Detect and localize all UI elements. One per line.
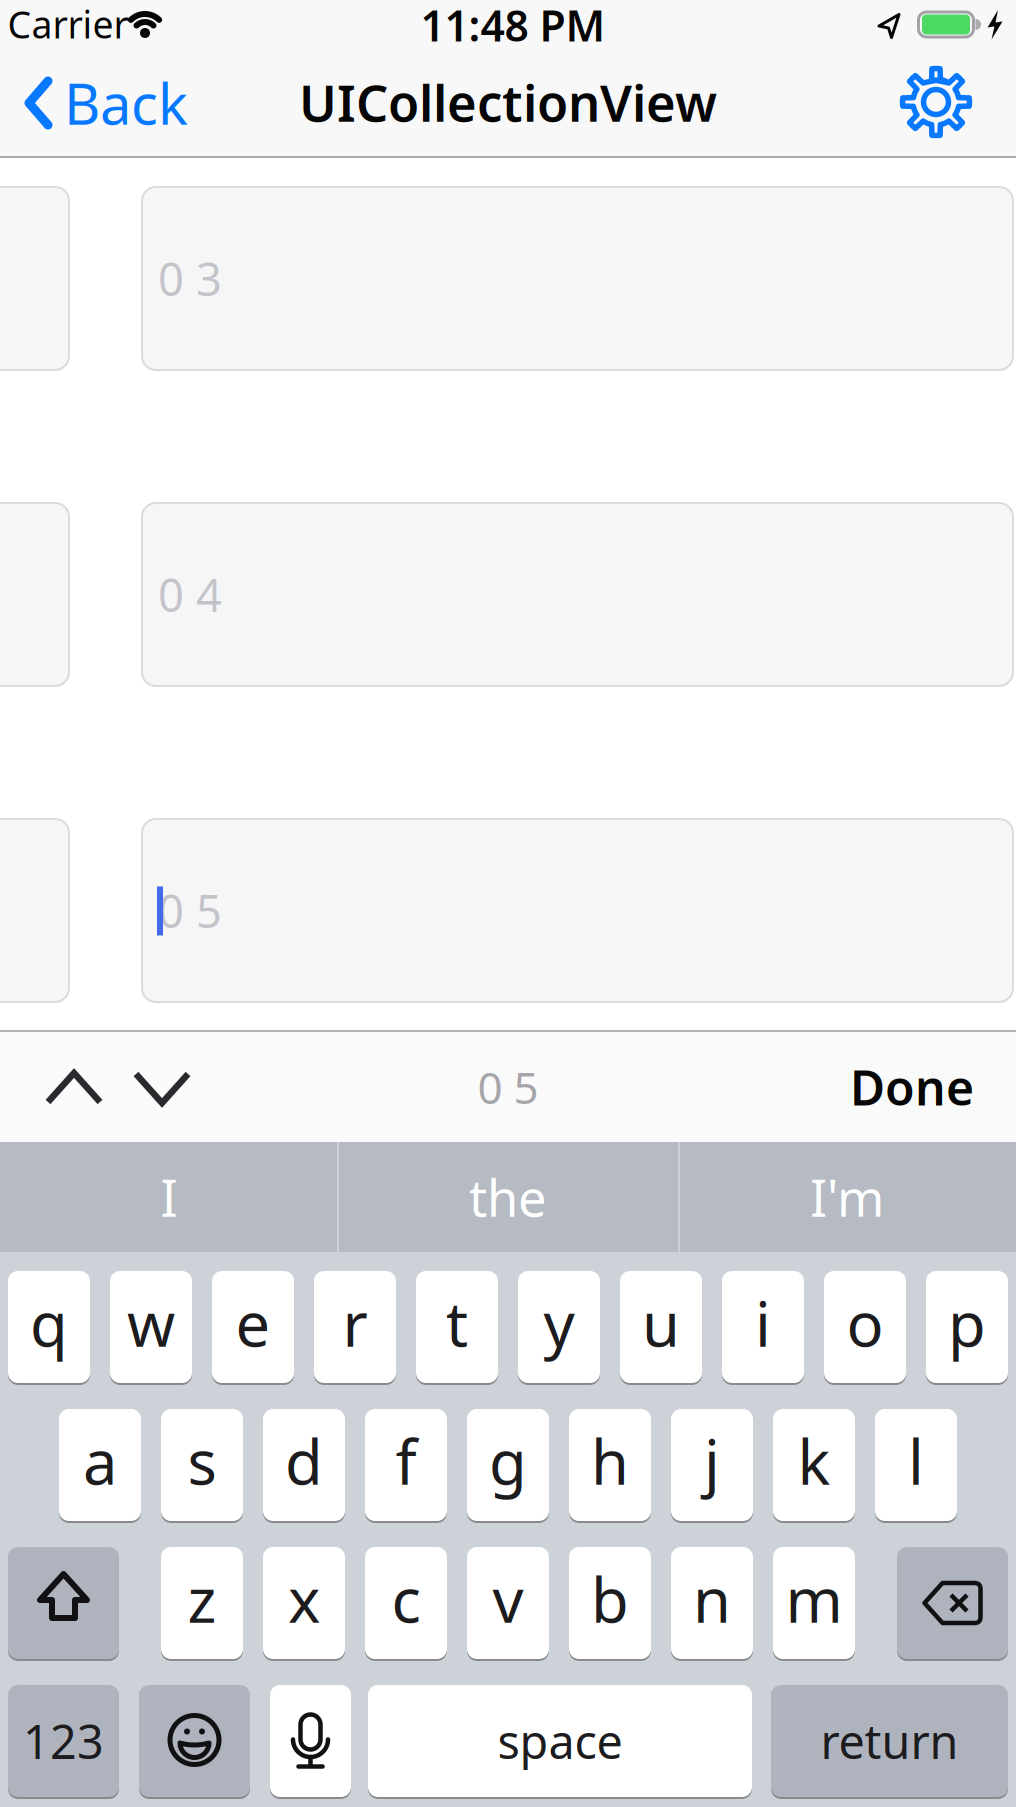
staticText: b [591, 1558, 629, 1640]
button[interactable]: y [518, 1270, 600, 1384]
staticText: x [288, 1558, 320, 1640]
button[interactable]: 0 3 [141, 186, 1014, 371]
staticText: v [492, 1558, 523, 1640]
button[interactable]: x [263, 1546, 345, 1660]
button[interactable]: k [773, 1408, 855, 1522]
button[interactable]: l [875, 1408, 957, 1522]
staticText: 11:48 PM [420, 0, 605, 53]
button[interactable]: Numbers [8, 1684, 119, 1798]
staticText: f [395, 1420, 416, 1502]
button[interactable]: Delete [897, 1546, 1008, 1660]
staticText: Carrier [7, 0, 128, 49]
staticText: j [704, 1420, 720, 1502]
button[interactable]: Dictate [270, 1684, 351, 1798]
staticText: 0 5 [158, 880, 222, 941]
staticText: 0 5 [477, 1058, 538, 1116]
button[interactable]: Done [850, 1055, 974, 1119]
button[interactable]: 0 4 [141, 502, 1014, 687]
button[interactable]: h [569, 1408, 651, 1522]
button[interactable]: I'm [682, 1142, 1012, 1252]
button[interactable]: p [926, 1270, 1008, 1384]
button[interactable]: w [110, 1270, 192, 1384]
staticText: n [693, 1558, 731, 1640]
button[interactable]: d [263, 1408, 345, 1522]
button[interactable]: Next field [132, 1069, 192, 1107]
staticText: h [591, 1420, 629, 1502]
button[interactable]: z [161, 1546, 243, 1660]
staticText: 0 3 [158, 248, 222, 309]
button[interactable]: Return [771, 1684, 1008, 1798]
staticText: the [469, 1163, 547, 1231]
button[interactable]: Emoji [139, 1684, 250, 1798]
staticText: p [948, 1282, 986, 1364]
staticText: r [342, 1282, 367, 1364]
staticText: I'm [810, 1163, 884, 1231]
button[interactable]: Previous field [44, 1069, 104, 1107]
staticText: return [820, 1710, 958, 1772]
button[interactable]: space [368, 1684, 752, 1798]
button[interactable]: b [569, 1546, 651, 1660]
button[interactable]: I [4, 1142, 334, 1252]
button[interactable]: j [671, 1408, 753, 1522]
staticText: w [127, 1282, 175, 1364]
staticText: Done [850, 1055, 974, 1119]
button[interactable]: c [365, 1546, 447, 1660]
button[interactable]: a [59, 1408, 141, 1522]
button[interactable]: Settings [902, 68, 969, 135]
staticText: 0 4 [158, 564, 222, 625]
staticText: y [543, 1282, 574, 1364]
staticText: e [235, 1282, 270, 1364]
staticText: s [187, 1420, 216, 1502]
button[interactable]: i [722, 1270, 804, 1384]
staticText: space [497, 1710, 622, 1772]
button[interactable]: o [824, 1270, 906, 1384]
staticText: m [785, 1558, 842, 1640]
button[interactable]: n [671, 1546, 753, 1660]
button[interactable]: v [467, 1546, 549, 1660]
button[interactable]: r [314, 1270, 396, 1384]
button[interactable]: g [467, 1408, 549, 1522]
button[interactable]: Back [26, 66, 188, 140]
button[interactable]: q [8, 1270, 90, 1384]
staticText: 123 [23, 1710, 104, 1772]
staticText: q [30, 1282, 68, 1364]
button[interactable]: u [620, 1270, 702, 1384]
staticText: l [908, 1420, 924, 1502]
staticText: i [755, 1282, 771, 1364]
staticText: d [285, 1420, 323, 1502]
staticText: t [446, 1282, 468, 1364]
button[interactable]: s [161, 1408, 243, 1522]
button[interactable]: the [343, 1142, 673, 1252]
staticText: a [83, 1420, 117, 1502]
button[interactable]: 0 5 [141, 818, 1014, 1003]
button[interactable]: m [773, 1546, 855, 1660]
staticText: z [187, 1558, 216, 1640]
button[interactable]: t [416, 1270, 498, 1384]
button[interactable]: Shift [8, 1546, 119, 1660]
staticText: o [846, 1282, 883, 1364]
staticText: u [642, 1282, 680, 1364]
staticText: I [160, 1163, 177, 1231]
button[interactable]: e [212, 1270, 294, 1384]
staticText: g [489, 1420, 527, 1502]
button[interactable]: f [365, 1408, 447, 1522]
staticText: Back [64, 66, 188, 140]
staticText: k [797, 1420, 830, 1502]
staticText: UICollectionView [299, 68, 717, 136]
staticText: c [391, 1558, 420, 1640]
